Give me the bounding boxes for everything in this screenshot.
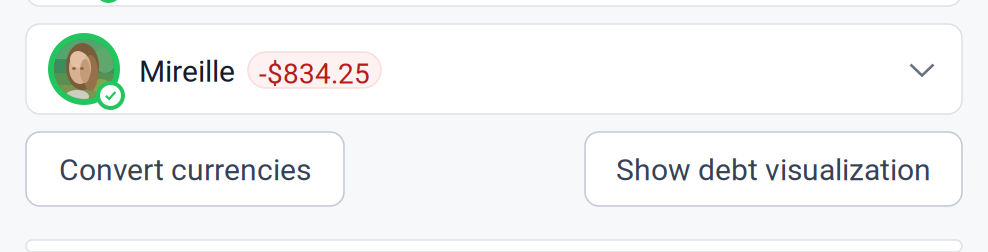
button[interactable]: Show debt visualization: [585, 132, 962, 206]
staticText: -$834.25: [259, 58, 370, 90]
staticText: Mireille: [139, 54, 235, 89]
button[interactable]: Convert currencies: [26, 132, 344, 206]
staticText: Convert currencies: [59, 152, 311, 188]
staticText: Show debt visualization: [616, 152, 931, 188]
button[interactable]: Mireille: [26, 24, 962, 114]
